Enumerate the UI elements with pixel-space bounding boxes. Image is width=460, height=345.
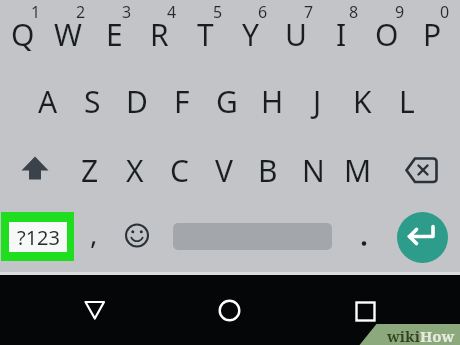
button[interactable]: J [295, 73, 339, 129]
staticText: N [302, 150, 325, 191]
staticText: W [54, 14, 82, 55]
button[interactable]: E [92, 6, 136, 62]
staticText: , [90, 214, 98, 252]
staticText: B [258, 150, 278, 191]
staticText: V [215, 150, 233, 191]
staticText: U [285, 14, 307, 55]
button[interactable]: B [246, 142, 290, 198]
button[interactable]: Q [1, 6, 45, 62]
button[interactable]: H [250, 73, 294, 129]
button[interactable]: U [274, 6, 318, 62]
button[interactable]: G [205, 73, 249, 129]
button[interactable]: T [183, 6, 227, 62]
button[interactable]: ?123 [1, 212, 74, 261]
staticText: 4 [167, 1, 177, 21]
button[interactable]: Y [228, 6, 272, 62]
button[interactable]: N [291, 142, 335, 198]
button[interactable]: M [336, 142, 380, 198]
staticText: P [423, 14, 442, 55]
staticText: H [261, 81, 284, 122]
staticText: wiki [387, 326, 420, 345]
staticText: G [216, 81, 238, 122]
staticText: 7 [304, 1, 314, 21]
staticText: 2 [76, 1, 86, 21]
button[interactable]: O [365, 6, 409, 62]
staticText: X [126, 150, 144, 191]
button[interactable]: R [137, 6, 181, 62]
button[interactable]: I [319, 6, 363, 62]
staticText: 0 [440, 1, 450, 21]
staticText: S [84, 81, 101, 122]
button[interactable]: S [70, 73, 114, 129]
button[interactable]: D [115, 73, 159, 129]
button[interactable]: A [26, 73, 70, 129]
staticText: C [170, 150, 189, 191]
staticText: 8 [349, 1, 359, 21]
staticText: 9 [395, 1, 405, 21]
button[interactable]: K [340, 73, 384, 129]
staticText: L [399, 81, 415, 122]
button[interactable]: W [46, 6, 90, 62]
staticText: I [336, 14, 347, 55]
button[interactable]: , [79, 213, 109, 253]
staticText: ?123 [17, 224, 60, 251]
button[interactable] [399, 146, 443, 194]
staticText: R [150, 14, 169, 55]
staticText: M [344, 150, 372, 191]
staticText: 5 [213, 1, 223, 21]
staticText: Q [11, 14, 35, 55]
staticText: D [126, 81, 148, 122]
button[interactable]: X [113, 142, 157, 198]
staticText: 3 [122, 1, 132, 21]
staticText: 6 [258, 1, 268, 21]
staticText: O [375, 14, 399, 55]
button[interactable] [397, 212, 448, 263]
button[interactable]: V [202, 142, 246, 198]
staticText: How [420, 326, 455, 345]
button[interactable]: F [160, 73, 204, 129]
staticText: J [313, 81, 322, 122]
button[interactable] [73, 290, 117, 330]
staticText: A [38, 81, 58, 122]
staticText: F [174, 81, 190, 122]
staticText: Z [81, 150, 99, 191]
button[interactable] [343, 290, 387, 330]
staticText: Y [242, 14, 259, 55]
button[interactable] [342, 213, 386, 258]
button[interactable]: C [157, 142, 201, 198]
button[interactable] [13, 146, 57, 194]
button[interactable]: P [410, 6, 454, 62]
button[interactable]: Z [68, 142, 112, 198]
staticText: E [106, 14, 123, 55]
staticText: K [353, 81, 372, 122]
button[interactable] [115, 213, 159, 258]
staticText: 1 [31, 1, 41, 21]
button[interactable]: L [385, 73, 429, 129]
button[interactable] [207, 290, 251, 330]
staticText: T [197, 14, 214, 55]
